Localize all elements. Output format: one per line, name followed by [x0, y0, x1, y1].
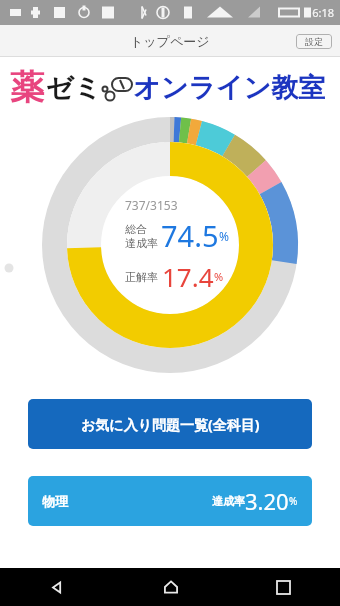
- staticText: 16:18: [306, 5, 335, 20]
- staticText: オンライン教室: [133, 71, 326, 105]
- button[interactable]: お気に入り問題一覧(全科目): [28, 399, 312, 449]
- button[interactable]: Back: [0, 568, 114, 606]
- staticText: %: [219, 228, 229, 244]
- staticText: お気に入り問題一覧(全科目): [81, 415, 260, 434]
- button[interactable]: Home: [114, 568, 227, 606]
- staticText: 達成率: [125, 236, 158, 250]
- staticText: トップページ: [130, 33, 210, 49]
- button[interactable]: 物理: [28, 476, 312, 526]
- staticText: %: [289, 494, 298, 508]
- staticText: ゼミ: [46, 71, 102, 105]
- staticText: 74.5: [161, 216, 219, 255]
- staticText: 物理: [42, 493, 68, 509]
- staticText: 正解率: [125, 270, 158, 284]
- staticText: 3.20: [245, 486, 289, 516]
- button[interactable]: 設定: [296, 34, 332, 49]
- staticText: 17.4: [162, 259, 214, 294]
- staticText: %: [214, 269, 224, 284]
- staticText: 設定: [305, 36, 323, 47]
- staticText: 達成率: [212, 494, 245, 508]
- button[interactable]: Recents: [227, 568, 340, 606]
- staticText: 737/3153: [125, 197, 178, 213]
- staticText: 総合: [125, 222, 147, 236]
- staticText: 薬: [10, 66, 44, 109]
